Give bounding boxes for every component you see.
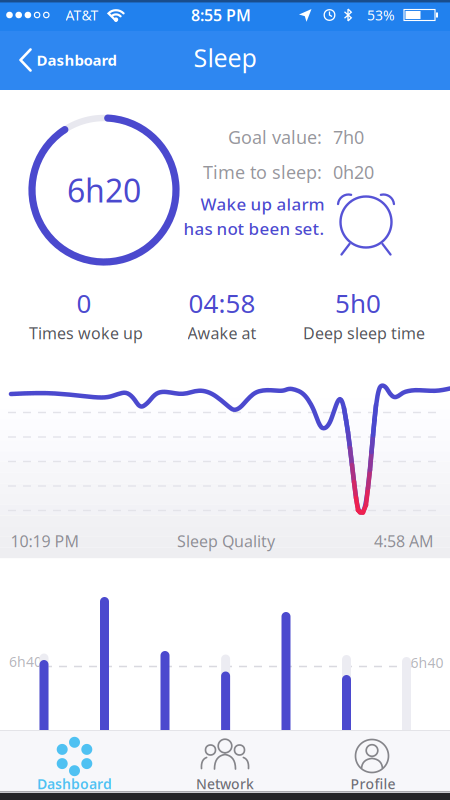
staticText: Time to sleep: — [203, 160, 322, 184]
staticText: 5h0 — [335, 286, 381, 320]
staticText: Profile — [350, 774, 395, 793]
button[interactable]: Profile — [298, 730, 448, 800]
staticText: has not been set. — [183, 217, 324, 240]
staticText: 6h40 — [9, 652, 42, 671]
button[interactable]: Dashboard — [20, 49, 116, 70]
staticText: Times woke up — [29, 322, 143, 344]
staticText: Sleep Quality — [177, 530, 275, 552]
staticText: AT&T — [65, 6, 98, 24]
staticText: 53% — [367, 6, 395, 24]
staticText: 0h20 — [333, 160, 374, 184]
staticText: Sleep — [193, 41, 256, 74]
button[interactable]: Dashboard — [0, 730, 149, 800]
staticText: Wake up alarm — [200, 193, 324, 215]
button[interactable]: Network — [150, 730, 300, 800]
staticText: Goal value: — [228, 125, 322, 149]
staticText: 10:19 PM — [10, 530, 79, 552]
staticText: Deep sleep time — [303, 322, 425, 344]
staticText: Network — [196, 774, 254, 793]
staticText: Awake at — [187, 322, 256, 344]
staticText: 8:55 PM — [191, 4, 251, 26]
staticText: 0 — [76, 286, 91, 320]
staticText: Dashboard — [36, 50, 116, 70]
staticText: 6h40 — [410, 653, 443, 672]
staticText: 7h0 — [333, 125, 364, 149]
staticText: 04:58 — [188, 286, 255, 320]
staticText: Dashboard — [37, 774, 112, 793]
staticText: 6h20 — [67, 169, 141, 211]
staticText: 4:58 AM — [374, 530, 434, 552]
